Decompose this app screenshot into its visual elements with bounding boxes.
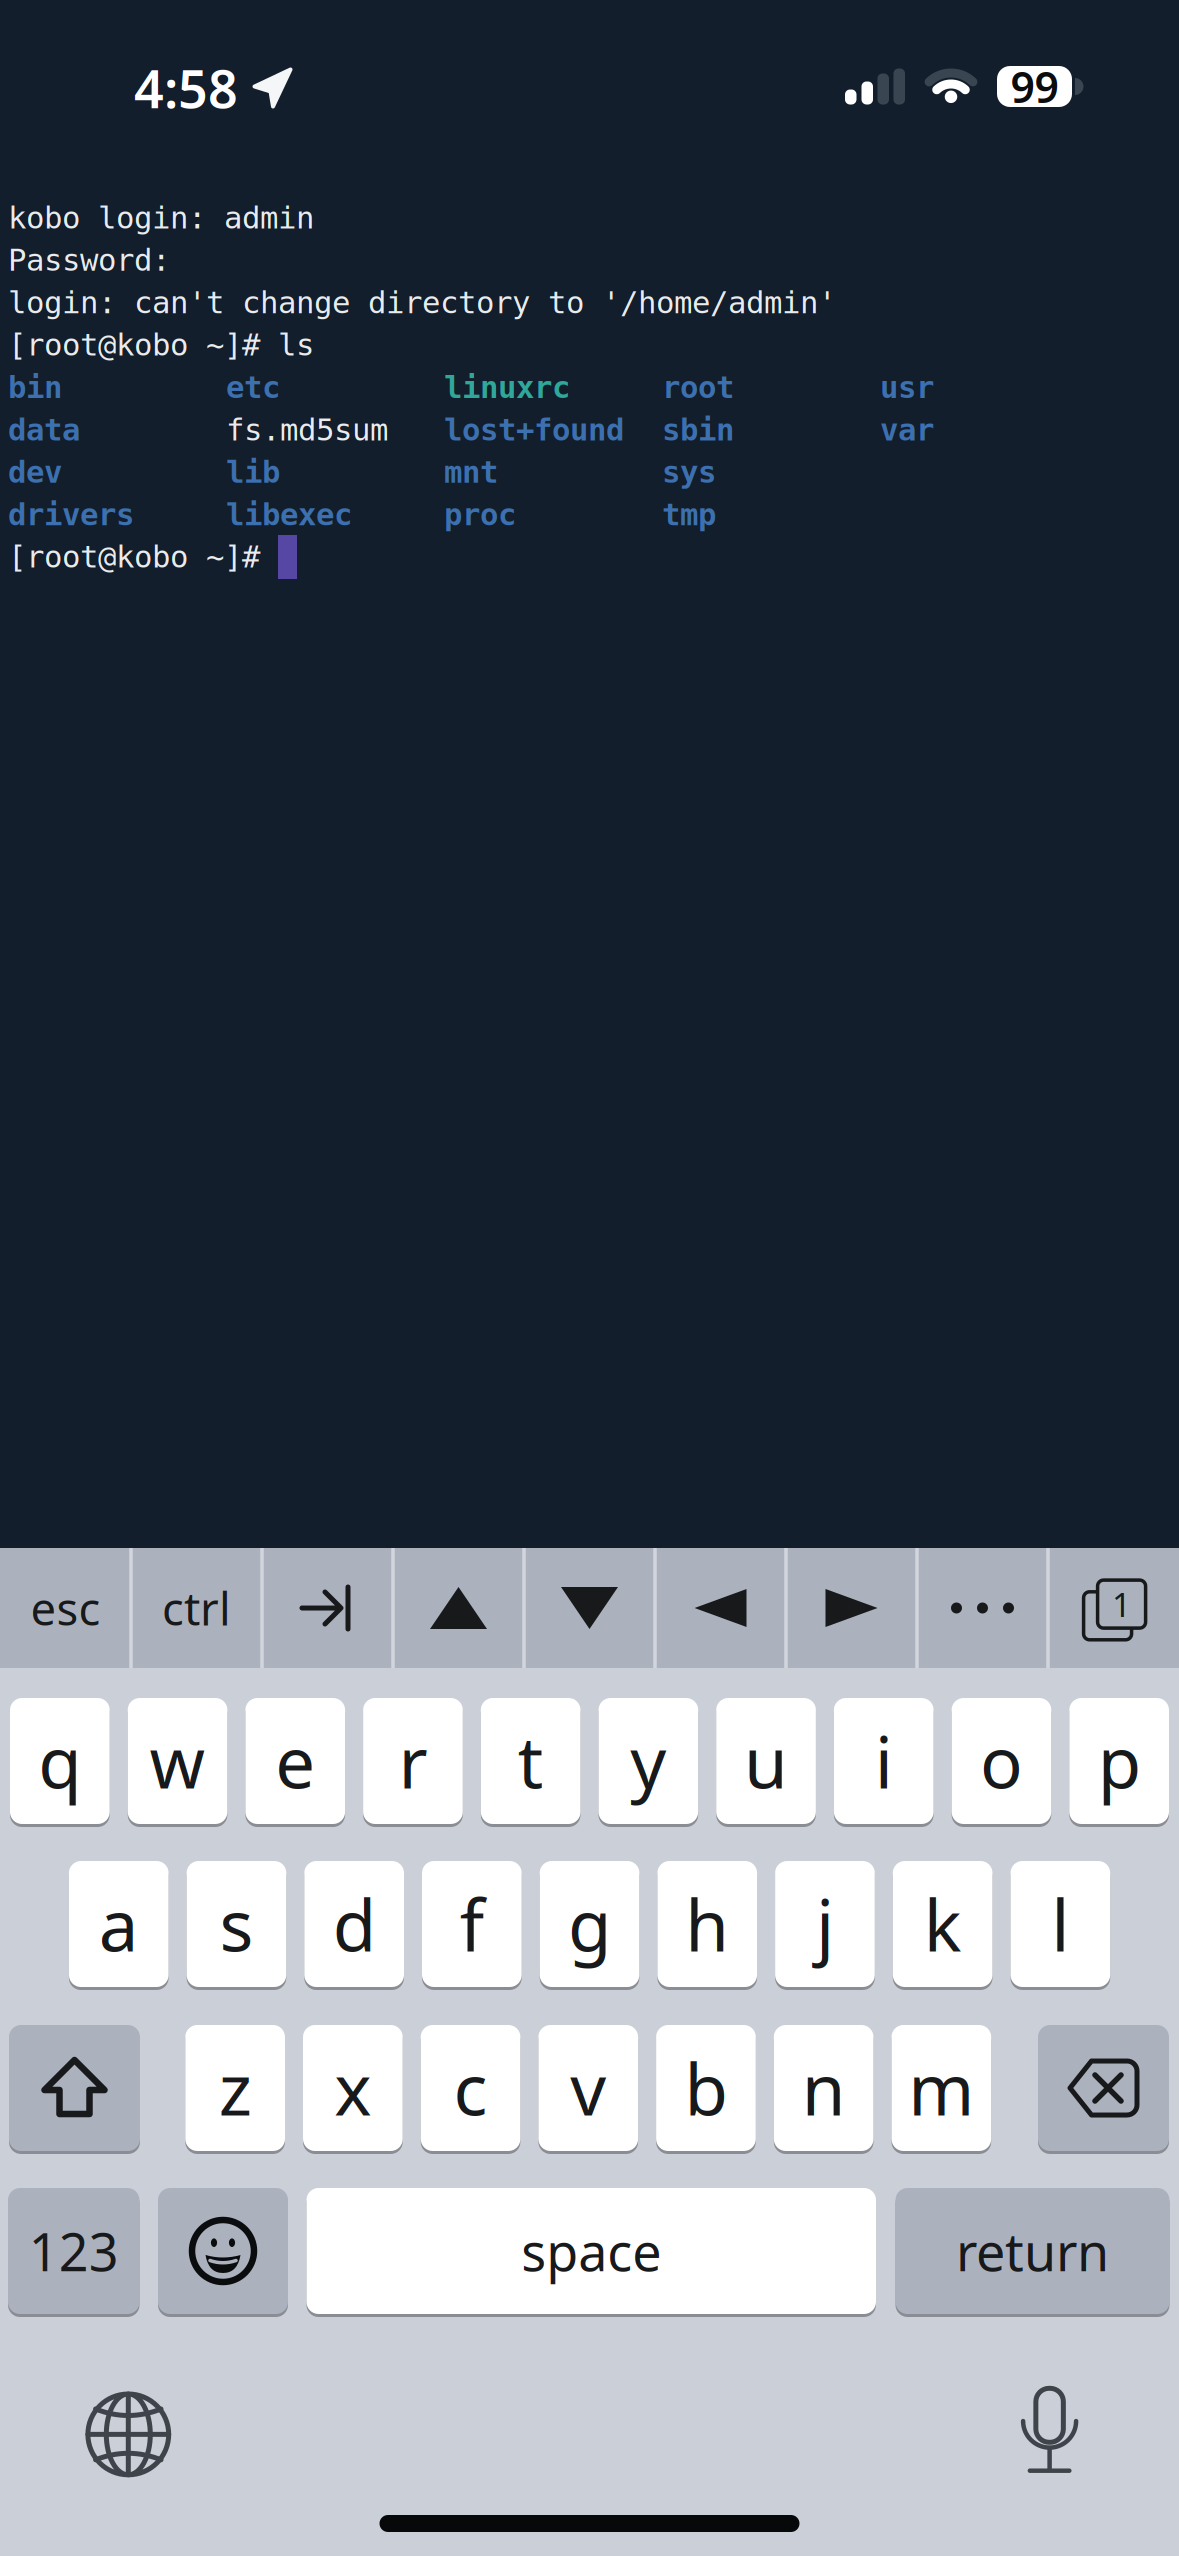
button[interactable]: x: [303, 2025, 403, 2151]
button[interactable]: l: [1010, 1861, 1110, 1987]
staticText: etc: [226, 370, 280, 405]
staticText: j: [816, 1877, 834, 1971]
button[interactable]: More: [917, 1548, 1048, 1668]
staticText: 123: [29, 2216, 119, 2286]
staticText: f: [460, 1877, 484, 1971]
button[interactable]: m: [891, 2025, 991, 2151]
staticText: lib: [226, 455, 280, 490]
staticText: c: [454, 2041, 488, 2135]
staticText: ctrl: [162, 1578, 231, 1638]
button[interactable]: Delete: [1038, 2025, 1169, 2151]
staticText: esc: [30, 1578, 100, 1638]
staticText: sys: [662, 455, 716, 490]
button[interactable]: return: [895, 2188, 1169, 2314]
button[interactable]: Tab: [262, 1548, 393, 1668]
button[interactable]: j: [775, 1861, 875, 1987]
staticText: proc: [444, 497, 516, 532]
staticText: y: [630, 1714, 666, 1808]
staticText: return: [956, 2216, 1109, 2286]
button[interactable]: u: [716, 1698, 816, 1824]
button[interactable]: n: [774, 2025, 873, 2151]
staticText: Password:: [8, 243, 170, 278]
staticText: kobo login: admin: [8, 200, 314, 235]
staticText: e: [275, 1714, 315, 1808]
staticText: g: [568, 1877, 611, 1971]
button[interactable]: w: [128, 1698, 227, 1824]
staticText: fs.md5sum: [226, 412, 388, 447]
staticText: mnt: [444, 455, 498, 490]
button[interactable]: Right arrow: [786, 1548, 917, 1668]
button[interactable]: t: [481, 1698, 580, 1824]
button[interactable]: k: [893, 1861, 992, 1987]
staticText: [root@kobo ~]#: [8, 540, 278, 574]
staticText: w: [150, 1714, 206, 1808]
button[interactable]: e: [245, 1698, 345, 1824]
staticText: q: [38, 1714, 81, 1808]
button[interactable]: Sessions: [1048, 1548, 1179, 1668]
staticText: t: [518, 1714, 544, 1808]
staticText: login: can't change directory to '/home/…: [8, 285, 836, 320]
staticText: space: [521, 2216, 661, 2286]
button[interactable]: c: [421, 2025, 520, 2151]
button[interactable]: v: [538, 2025, 638, 2151]
staticText: k: [924, 1877, 962, 1971]
button[interactable]: Dictate: [995, 2375, 1105, 2485]
button[interactable]: d: [304, 1861, 404, 1987]
staticText: 4:58: [134, 53, 238, 123]
button[interactable]: o: [952, 1698, 1051, 1824]
button[interactable]: h: [657, 1861, 757, 1987]
staticText: usr: [880, 370, 934, 405]
button[interactable]: Emoji: [158, 2188, 288, 2314]
button[interactable]: q: [10, 1698, 110, 1824]
staticText: 99: [1010, 58, 1058, 115]
staticText: var: [880, 412, 934, 447]
staticText: x: [334, 2041, 371, 2135]
button[interactable]: g: [540, 1861, 639, 1987]
button[interactable]: space: [306, 2188, 876, 2314]
staticText: libexec: [226, 497, 352, 532]
staticText: m: [908, 2041, 974, 2135]
button[interactable]: Shift: [9, 2025, 140, 2151]
staticText: z: [219, 2041, 252, 2135]
staticText: 1: [1112, 1582, 1131, 1626]
staticText: i: [875, 1714, 893, 1808]
button[interactable]: Up arrow: [393, 1548, 524, 1668]
button[interactable]: a: [69, 1861, 169, 1987]
button[interactable]: y: [598, 1698, 698, 1824]
staticText: root: [662, 370, 734, 405]
button[interactable]: p: [1069, 1698, 1169, 1824]
staticText: d: [333, 1877, 376, 1971]
button[interactable]: Escape: [0, 1548, 131, 1668]
staticText: sbin: [662, 412, 734, 447]
button[interactable]: Down arrow: [524, 1548, 655, 1668]
button[interactable]: i: [834, 1698, 934, 1824]
staticText: lost+found: [444, 412, 624, 447]
staticText: o: [980, 1714, 1023, 1808]
staticText: l: [1051, 1877, 1069, 1971]
button[interactable]: r: [363, 1698, 463, 1824]
staticText: drivers: [8, 497, 134, 532]
staticText: p: [1098, 1714, 1141, 1808]
staticText: linuxrc: [444, 370, 570, 405]
staticText: data: [8, 412, 80, 447]
staticText: n: [802, 2041, 846, 2135]
staticText: b: [684, 2041, 727, 2135]
staticText: [root@kobo ~]# ls: [8, 328, 314, 362]
button[interactable]: Next keyboard: [73, 2379, 183, 2489]
staticText: h: [685, 1877, 729, 1971]
staticText: s: [219, 1877, 253, 1971]
button[interactable]: Left arrow: [655, 1548, 786, 1668]
button[interactable]: b: [656, 2025, 756, 2151]
staticText: a: [99, 1877, 139, 1971]
staticText: r: [398, 1714, 427, 1808]
staticText: tmp: [662, 497, 716, 532]
button[interactable]: z: [185, 2025, 285, 2151]
button[interactable]: s: [187, 1861, 286, 1987]
staticText: u: [744, 1714, 788, 1808]
staticText: bin: [8, 370, 62, 405]
button[interactable]: Control: [131, 1548, 262, 1668]
button[interactable]: f: [422, 1861, 522, 1987]
staticText: v: [570, 2041, 606, 2135]
button[interactable]: Numbers: [8, 2188, 139, 2314]
staticText: dev: [8, 455, 62, 490]
